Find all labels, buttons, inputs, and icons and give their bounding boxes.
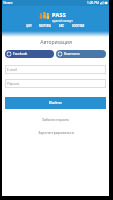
button[interactable]: E-mail bbox=[5, 65, 106, 74]
button[interactable]: Зарегистрироваться bbox=[2, 129, 109, 136]
staticText: ЦФТ bbox=[26, 24, 32, 28]
button[interactable]: Пароль bbox=[5, 79, 106, 88]
staticText: единый паспорт bbox=[52, 19, 73, 23]
staticText: Зарегистрироваться bbox=[38, 130, 74, 135]
button[interactable]: Войти bbox=[5, 97, 106, 109]
button[interactable]: Facebook bbox=[5, 50, 54, 58]
staticText: Войти bbox=[49, 100, 62, 106]
staticText: Авторизация bbox=[40, 39, 72, 46]
staticText: БКС bbox=[59, 24, 65, 28]
staticText: ЗОЛОТАЯ bbox=[72, 24, 85, 28]
staticText: Пароль bbox=[7, 81, 20, 86]
staticText: FAKTURA bbox=[39, 24, 51, 28]
staticText: Забыли пароль bbox=[42, 117, 69, 122]
staticText: E-mail bbox=[7, 67, 17, 72]
staticText: Facebook bbox=[13, 52, 28, 56]
staticText: PASS bbox=[52, 11, 67, 19]
staticText: 1:26 PM bbox=[87, 1, 99, 5]
staticText: Вконтакте bbox=[64, 52, 80, 56]
button[interactable]: Вконтакте bbox=[56, 50, 106, 58]
button[interactable]: Забыли пароль bbox=[2, 116, 109, 123]
staticText: Steam bbox=[3, 1, 13, 5]
